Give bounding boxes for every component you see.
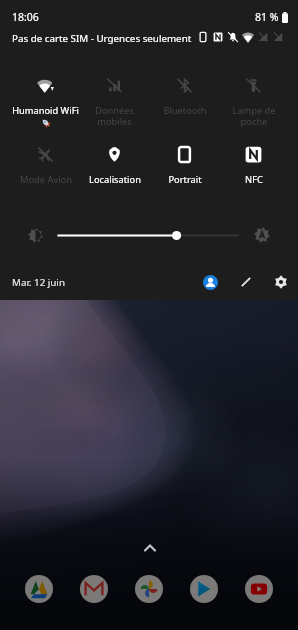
staticText: Mode Avion	[20, 173, 72, 186]
button[interactable]: Mode Avion	[11, 135, 80, 186]
staticText: Données mobiles	[95, 104, 134, 127]
button[interactable]: Localisation	[80, 135, 149, 186]
button[interactable]: Auto brightness	[248, 221, 276, 249]
button[interactable]: NFC	[219, 135, 288, 186]
button[interactable]: Photos	[135, 575, 163, 603]
staticText: Humanoid WiFi	[12, 104, 79, 117]
button[interactable]: Données mobiles	[80, 66, 149, 127]
button[interactable]: Portrait	[150, 135, 219, 186]
staticText: Bluetooth	[163, 104, 207, 117]
button[interactable]: Play Store	[190, 575, 218, 603]
button[interactable]: Drive	[25, 575, 53, 603]
button[interactable]: YouTube	[245, 575, 273, 603]
staticText: Mar. 12 juin	[12, 276, 65, 289]
staticText: 81 %	[255, 10, 279, 24]
button[interactable]: Settings	[271, 272, 291, 292]
button[interactable]: Bluetooth	[150, 66, 219, 117]
button[interactable]: Brightness level	[21, 221, 49, 249]
staticText: NFC	[245, 173, 263, 186]
staticText: Portrait	[168, 173, 202, 186]
staticText: Localisation	[89, 173, 141, 186]
button[interactable]: Edit	[236, 272, 256, 292]
button[interactable]: Brightness	[52, 227, 244, 243]
staticText: 18:06	[12, 10, 39, 24]
button[interactable]: Humanoid WiFi	[11, 66, 80, 128]
button[interactable]: Lampe de poche	[219, 66, 288, 127]
button[interactable]: User account	[200, 272, 220, 292]
button[interactable]: Gmail	[80, 575, 108, 603]
staticText: Lampe de poche	[232, 104, 276, 127]
staticText: Pas de carte SIM - Urgences seulement	[12, 32, 192, 45]
